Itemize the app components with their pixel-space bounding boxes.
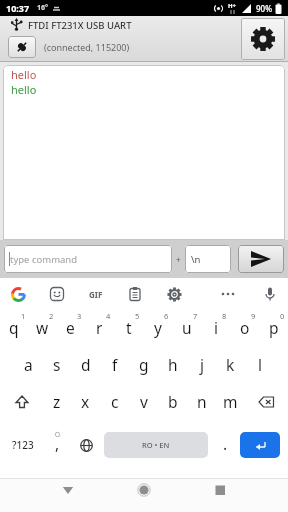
button[interactable]: o [230, 310, 259, 346]
staticText: + [176, 254, 181, 265]
button[interactable] [256, 280, 284, 308]
staticText: f [112, 354, 118, 375]
button[interactable] [214, 280, 242, 308]
staticText: d [81, 354, 91, 375]
staticText: s [53, 354, 61, 375]
staticText: j [200, 354, 204, 375]
staticText: 9 [251, 311, 256, 321]
button[interactable] [0, 383, 43, 420]
button[interactable] [241, 18, 285, 60]
button[interactable]: g [129, 346, 158, 383]
staticText: RO • EN [142, 440, 170, 450]
staticText: e [66, 317, 75, 338]
staticText: 1 [21, 311, 26, 321]
button[interactable]: u [172, 310, 201, 346]
staticText: t [126, 317, 132, 338]
button[interactable]: q [0, 310, 28, 346]
staticText: b [168, 391, 178, 412]
button[interactable]: \n [185, 245, 231, 273]
staticText: n [197, 391, 207, 412]
staticText: GIF [89, 289, 103, 300]
staticText: hello [11, 67, 37, 82]
staticText: 3 [77, 311, 82, 321]
button[interactable]: m [216, 383, 245, 420]
staticText: k [226, 354, 235, 375]
button[interactable]: t [114, 310, 143, 346]
button[interactable] [43, 280, 71, 308]
staticText: h [168, 354, 178, 375]
button[interactable]: d [71, 346, 100, 383]
staticText: c [111, 391, 119, 412]
button[interactable]: v [129, 383, 158, 420]
button[interactable]: r [85, 310, 114, 346]
button[interactable] [245, 383, 288, 420]
staticText: \n [191, 253, 201, 266]
staticText: m [223, 391, 238, 412]
staticText: (connected, 115200) [44, 41, 130, 53]
button[interactable] [30, 478, 106, 512]
button[interactable]: h [158, 346, 187, 383]
staticText: u [182, 317, 192, 338]
button[interactable]: y [143, 310, 172, 346]
button[interactable]: w [28, 310, 56, 346]
staticText: , [55, 433, 60, 454]
staticText: . [223, 433, 228, 454]
button[interactable]: x [71, 383, 100, 420]
button[interactable]: s [42, 346, 71, 383]
staticText: 8 [222, 311, 227, 321]
button[interactable] [238, 245, 284, 273]
button[interactable]: , [43, 428, 72, 462]
button[interactable]: GIF [82, 280, 110, 308]
button[interactable]: b [158, 383, 187, 420]
staticText: p [269, 317, 279, 338]
button[interactable]: j [187, 346, 216, 383]
button[interactable] [182, 478, 258, 512]
staticText: o [240, 317, 250, 338]
button[interactable]: ?123 [3, 428, 43, 462]
button[interactable]: a [14, 346, 42, 383]
button[interactable]: l [245, 346, 274, 383]
staticText: q [9, 317, 19, 338]
staticText: 6 [164, 311, 169, 321]
button[interactable] [121, 280, 149, 308]
staticText: i [214, 317, 218, 338]
staticText: 5 [135, 311, 140, 321]
staticText: 90% [256, 3, 272, 14]
button[interactable] [4, 280, 32, 308]
button[interactable]: z [43, 383, 71, 420]
staticText: 4 [106, 311, 111, 321]
staticText: type command [10, 253, 78, 266]
button[interactable]: f [100, 346, 129, 383]
button[interactable]: p [259, 310, 288, 346]
staticText: y [154, 317, 162, 338]
staticText: 16° [37, 3, 48, 13]
button[interactable] [240, 432, 280, 458]
button[interactable]: RO • EN [104, 432, 208, 458]
staticText: r [96, 317, 103, 338]
staticText: a [24, 354, 33, 375]
button[interactable]: n [187, 383, 216, 420]
button[interactable] [72, 428, 101, 462]
staticText: 7 [193, 311, 198, 321]
staticText: FTDI FT231X USB UART [28, 19, 132, 32]
button[interactable] [160, 280, 188, 308]
button[interactable] [8, 36, 36, 58]
button[interactable]: c [100, 383, 129, 420]
staticText: l [258, 354, 262, 375]
button[interactable]: k [216, 346, 245, 383]
staticText: 0 [280, 311, 285, 321]
staticText: z [53, 391, 61, 412]
staticText: H+ [228, 2, 237, 10]
button[interactable]: . [211, 428, 240, 462]
staticText: g [139, 354, 149, 375]
staticText: w [36, 317, 49, 338]
button[interactable]: e [56, 310, 85, 346]
button[interactable]: i [201, 310, 230, 346]
button[interactable]: type command [4, 245, 172, 273]
button[interactable] [106, 478, 182, 512]
staticText: x [81, 391, 90, 412]
staticText: ?123 [12, 438, 34, 452]
staticText: hello [11, 82, 37, 97]
staticText: v [140, 391, 148, 412]
staticText: 10:37 [6, 2, 30, 14]
